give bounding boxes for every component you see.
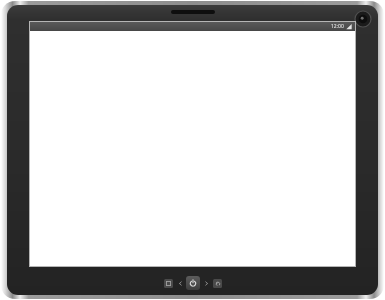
button[interactable]: Menu	[164, 279, 173, 288]
button[interactable]: Next	[203, 280, 209, 286]
staticText: 12:00	[331, 23, 344, 30]
button[interactable]: Previous	[177, 280, 183, 286]
button[interactable]: Back	[213, 279, 222, 288]
button[interactable]: Power	[186, 276, 200, 290]
other: Camera	[355, 11, 371, 27]
